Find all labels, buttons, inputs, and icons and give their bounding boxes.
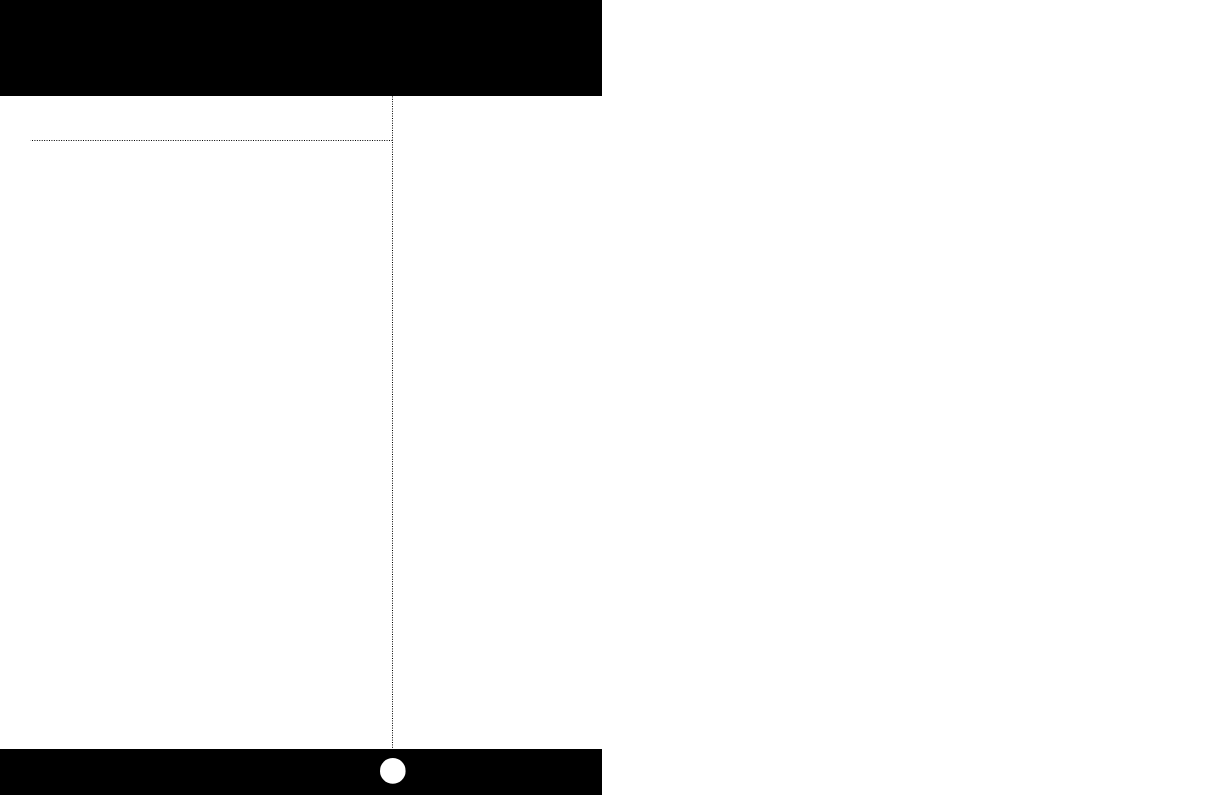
button[interactable]: Home — [380, 758, 406, 784]
button[interactable]: Canvas area — [0, 96, 602, 749]
